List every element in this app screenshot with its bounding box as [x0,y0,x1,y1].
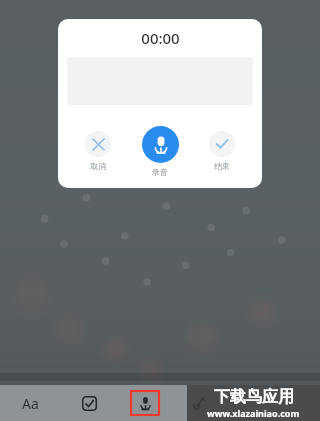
button[interactable]: Checklist [60,385,118,421]
button[interactable]: Finish [192,125,252,172]
staticText: 结束 [214,161,230,171]
button[interactable]: Record [130,125,190,178]
button[interactable]: Voice record [118,385,172,421]
staticText: Aa [22,394,39,413]
button[interactable]: Cancel [68,125,128,172]
staticText: 下载鸟应用 [214,387,294,407]
staticText: 录音 [152,167,168,177]
staticText: www.xlazainiao.com [207,407,300,419]
staticText: 00:00 [141,28,180,48]
button[interactable]: Aa [0,385,60,421]
button[interactable]: Attach [172,385,226,421]
staticText: 取消 [90,161,106,171]
